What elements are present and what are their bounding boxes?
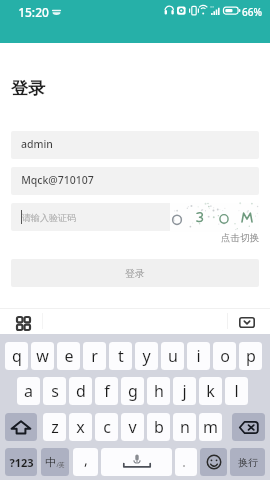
- staticText: ?123: [9, 455, 34, 470]
- button[interactable]: g: [121, 377, 144, 405]
- staticText: 登录: [125, 267, 145, 280]
- button[interactable]: u: [161, 342, 184, 370]
- staticText: 15:20: [18, 4, 49, 20]
- button[interactable]: Emoji: [200, 448, 227, 476]
- button[interactable]: Space: [101, 448, 172, 476]
- staticText: o: [220, 345, 230, 367]
- staticText: m: [203, 416, 218, 438]
- button[interactable]: 。: [175, 448, 197, 476]
- staticText: e: [64, 345, 74, 367]
- button[interactable]: k: [199, 377, 222, 405]
- staticText: n: [180, 416, 190, 438]
- button[interactable]: Backspace: [232, 413, 265, 441]
- button[interactable]: n: [173, 413, 196, 441]
- button[interactable]: Shift: [5, 413, 37, 441]
- staticText: ,: [84, 450, 88, 469]
- button[interactable]: b: [147, 413, 170, 441]
- staticText: u: [168, 345, 178, 367]
- staticText: g: [128, 380, 138, 402]
- button[interactable]: s: [43, 377, 66, 405]
- staticText: admin: [21, 137, 53, 151]
- staticText: /英: [56, 461, 65, 469]
- button[interactable]: m: [199, 413, 222, 441]
- button[interactable]: p: [239, 342, 262, 370]
- staticText: 66%: [242, 5, 262, 19]
- button[interactable]: 换行: [230, 448, 265, 476]
- staticText: q: [12, 345, 22, 367]
- staticText: 请输入验证码: [22, 212, 76, 223]
- staticText: 换行: [238, 456, 258, 469]
- button[interactable]: 登录: [11, 259, 259, 287]
- button[interactable]: a: [17, 377, 40, 405]
- staticText: s: [51, 380, 59, 402]
- staticText: 。: [182, 457, 191, 468]
- button[interactable]: e: [57, 342, 80, 370]
- button[interactable]: ,: [73, 448, 98, 476]
- button[interactable]: j: [173, 377, 196, 405]
- button[interactable]: Mqck@710107: [11, 167, 259, 195]
- button[interactable]: d: [69, 377, 92, 405]
- button[interactable]: x: [69, 413, 92, 441]
- staticText: y: [142, 345, 151, 367]
- staticText: h: [154, 380, 164, 402]
- button[interactable]: h: [147, 377, 170, 405]
- staticText: t: [118, 345, 124, 367]
- button[interactable]: w: [31, 342, 54, 370]
- staticText: i: [196, 345, 201, 367]
- button[interactable]: t: [109, 342, 132, 370]
- staticText: v: [128, 416, 137, 438]
- staticText: w: [36, 345, 49, 367]
- staticText: r: [91, 345, 98, 367]
- button[interactable]: y: [135, 342, 158, 370]
- button[interactable]: 请输入验证码: [11, 203, 259, 231]
- staticText: f: [104, 380, 110, 402]
- button[interactable]: c: [95, 413, 118, 441]
- button[interactable]: o: [213, 342, 236, 370]
- staticText: c: [103, 416, 111, 438]
- button[interactable]: 中: [41, 448, 69, 476]
- button[interactable]: Hide keyboard: [236, 314, 257, 330]
- staticText: l: [234, 380, 239, 402]
- button[interactable]: f: [95, 377, 118, 405]
- staticText: 登录: [11, 78, 45, 99]
- staticText: 点击切换: [221, 232, 259, 244]
- button[interactable]: l: [225, 377, 248, 405]
- staticText: 中: [45, 455, 56, 469]
- button[interactable]: Refresh captcha: [170, 203, 259, 232]
- button[interactable]: v: [121, 413, 144, 441]
- staticText: x: [76, 416, 85, 438]
- button[interactable]: ?123: [5, 448, 37, 476]
- staticText: d: [76, 380, 86, 402]
- button[interactable]: Keyboard apps: [14, 314, 32, 332]
- staticText: p: [246, 345, 256, 367]
- staticText: k: [206, 380, 215, 402]
- button[interactable]: admin: [11, 131, 259, 159]
- button[interactable]: z: [43, 413, 66, 441]
- staticText: z: [51, 416, 59, 438]
- staticText: a: [24, 380, 33, 402]
- staticText: b: [154, 416, 164, 438]
- button[interactable]: i: [187, 342, 210, 370]
- button[interactable]: r: [83, 342, 106, 370]
- button[interactable]: q: [5, 342, 28, 370]
- staticText: j: [182, 380, 187, 402]
- staticText: Mqck@710107: [21, 173, 94, 187]
